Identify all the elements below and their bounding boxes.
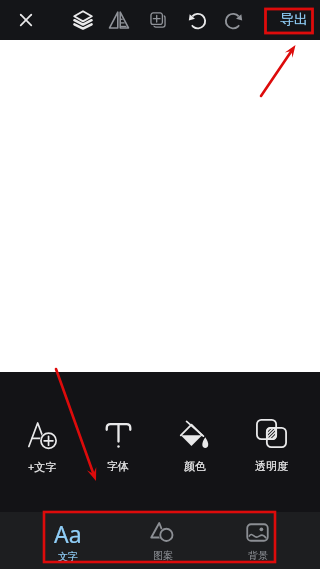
staticText: +文字 [28, 459, 57, 474]
staticText: 颜色 [184, 459, 206, 473]
button[interactable]: Close [11, 5, 41, 35]
button[interactable]: 图案 [115, 512, 210, 569]
button[interactable]: 透明度 [238, 418, 304, 473]
button[interactable]: Duplicate [143, 5, 173, 35]
button[interactable]: 导出 [280, 11, 308, 29]
button[interactable]: Mirror [104, 5, 134, 35]
staticText: 透明度 [255, 459, 288, 473]
button[interactable]: 字体 [85, 418, 151, 473]
button[interactable]: Undo [182, 5, 212, 35]
button[interactable]: +文字 [9, 418, 75, 474]
button[interactable]: Redo [219, 5, 249, 35]
staticText: 字体 [107, 459, 129, 473]
button[interactable]: Aa [21, 512, 115, 569]
staticText: Aa [54, 518, 82, 549]
button[interactable]: Layers [68, 5, 98, 35]
staticText: 背景 [248, 549, 268, 562]
button[interactable]: 颜色 [162, 418, 228, 473]
staticText: 导出 [280, 11, 308, 29]
staticText: 图案 [153, 549, 173, 562]
button[interactable]: 背景 [210, 512, 305, 569]
staticText: 文字 [58, 550, 78, 563]
